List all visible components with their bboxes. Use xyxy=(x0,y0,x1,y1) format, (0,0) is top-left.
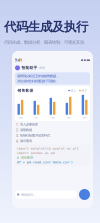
staticText: 2020 xyxy=(18,116,22,119)
staticText: 智能助手 xyxy=(22,65,38,70)
staticText: 绘制柱状图并设置样式 xyxy=(20,133,50,137)
staticText: 代码生成及执行 xyxy=(4,19,88,35)
staticText: 线上 xyxy=(71,89,77,92)
staticText: 继续提问… xyxy=(21,192,35,197)
staticText: 4. xyxy=(16,139,19,143)
staticText: 并生成对比柱状图进行可视化 xyxy=(17,79,56,83)
staticText: 请帮我分析近五年的销售数据， xyxy=(17,74,59,78)
staticText: 导入必要的库 xyxy=(20,122,38,126)
staticText: 刚刚 xyxy=(39,66,45,70)
staticText: 2023 xyxy=(67,116,71,119)
staticText: 展示图表 xyxy=(20,139,32,143)
staticText: # 读取数据 xyxy=(17,156,33,159)
staticText: import matplotlib.pyplot as plt xyxy=(17,147,79,150)
staticText: 线下 xyxy=(81,89,87,92)
staticText: 2. xyxy=(16,128,19,132)
staticText: df = pd.read_csv('data.csv') xyxy=(17,160,73,164)
staticText: 1. xyxy=(16,122,19,127)
staticText: 销售数据 xyxy=(17,88,33,93)
staticText: 读取数据 xyxy=(20,128,32,132)
staticText: 代码生成、数据分析、图表绘制、可视化互动 xyxy=(4,40,84,45)
staticText: 2024 xyxy=(83,116,87,119)
staticText: 9:41 xyxy=(15,58,22,62)
staticText: import pandas as pd xyxy=(17,151,55,155)
staticText: 2022 xyxy=(50,116,54,119)
staticText: 3. xyxy=(16,133,19,138)
staticText: 2021 xyxy=(34,116,38,119)
